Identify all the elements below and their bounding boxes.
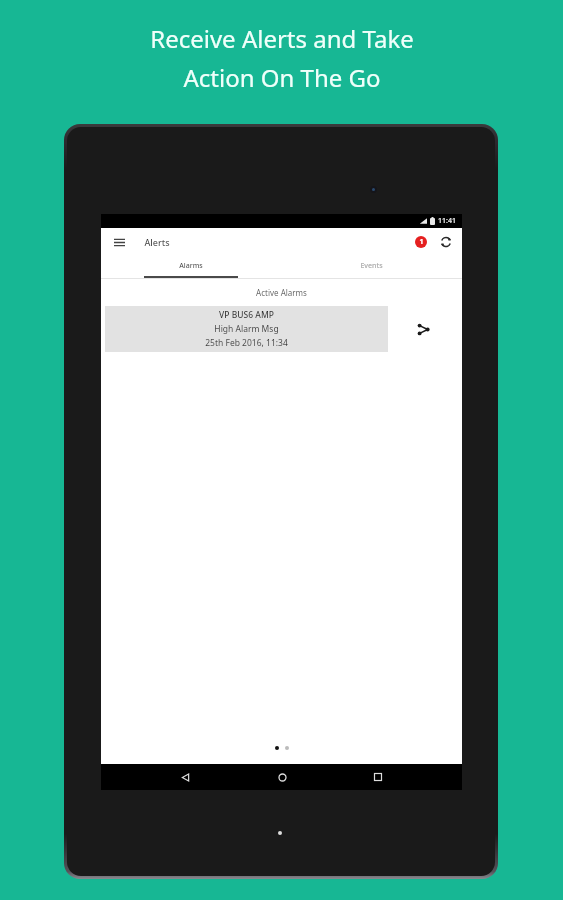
staticText: 11:41 — [438, 216, 456, 226]
button[interactable]: Recent apps — [365, 764, 391, 790]
button[interactable]: Share alarm — [388, 306, 458, 352]
staticText: Active Alarms — [101, 287, 462, 298]
button[interactable]: Open navigation menu — [109, 232, 129, 252]
staticText: Alarms — [179, 261, 203, 271]
button[interactable]: VP BUS6 AMP — [105, 306, 388, 352]
staticText: VP BUS6 AMP — [219, 309, 274, 321]
staticText: Receive Alerts and Take — [150, 22, 414, 55]
button[interactable]: 1 new alert — [415, 236, 427, 248]
button[interactable]: Alarms — [101, 255, 281, 276]
button[interactable]: Refresh — [437, 233, 455, 251]
button[interactable]: Home — [269, 764, 295, 790]
staticText: Events — [360, 261, 383, 271]
button[interactable]: Back — [172, 764, 198, 790]
staticText: Alerts — [144, 236, 170, 248]
staticText: Action On The Go — [183, 61, 381, 94]
staticText: High Alarm Msg — [214, 323, 279, 335]
button[interactable]: Page 2 — [285, 746, 289, 750]
staticText: 1 — [419, 237, 424, 247]
button[interactable]: Events — [281, 255, 462, 276]
staticText: 25th Feb 2016, 11:34 — [205, 337, 288, 349]
button[interactable]: Page 1 — [275, 746, 279, 750]
